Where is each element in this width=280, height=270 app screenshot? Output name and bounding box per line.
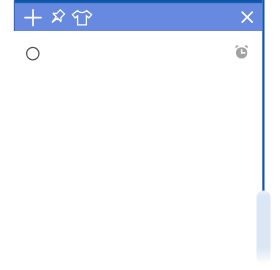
- button[interactable]: [47, 7, 67, 27]
- button[interactable]: [237, 7, 257, 27]
- button[interactable]: [25, 45, 42, 62]
- button[interactable]: [232, 43, 251, 62]
- button[interactable]: [72, 7, 92, 27]
- button[interactable]: [254, 190, 272, 264]
- button[interactable]: [24, 7, 44, 27]
